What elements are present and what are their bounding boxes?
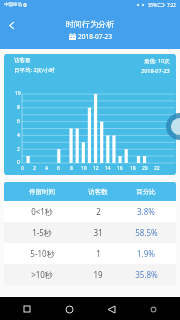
staticText: 31 (93, 227, 103, 238)
button[interactable]: 2018-07-23 (69, 32, 112, 41)
button[interactable]: 0<1秒 (4, 201, 176, 222)
staticText: 8 (70, 165, 73, 172)
staticText: 10 (81, 165, 87, 172)
staticText: 访客数 (88, 188, 108, 196)
staticText: 2 (96, 206, 101, 217)
button[interactable]: Screenshot (144, 300, 162, 318)
staticText: 7:22 (167, 2, 176, 8)
staticText: 12 (93, 165, 99, 172)
staticText: 2018-07-23 (78, 32, 112, 41)
staticText: 0<1秒 (31, 206, 53, 217)
staticText: 16 (117, 165, 123, 172)
staticText: 14 (105, 165, 111, 172)
staticText: 22 (154, 165, 160, 172)
staticText: 3.8% (137, 206, 155, 217)
staticText: 6 (17, 118, 20, 125)
button[interactable]: Back (102, 300, 120, 318)
staticText: 时间行为分析 (66, 19, 114, 29)
staticText: 1.9% (137, 248, 155, 259)
staticText: 访客量 (14, 57, 31, 64)
staticText: 中国移动 (4, 2, 22, 8)
staticText: 5-10秒 (30, 248, 55, 259)
button[interactable]: 1-5秒 (4, 222, 176, 243)
staticText: 35% (148, 2, 157, 8)
staticText: 8 (17, 104, 20, 111)
staticText: 20 (142, 165, 148, 172)
button[interactable]: Back (0, 14, 22, 36)
staticText: 4 (45, 165, 48, 172)
button[interactable]: >10秒 (4, 264, 176, 285)
staticText: 1 (96, 248, 101, 259)
button[interactable]: Recents (18, 300, 36, 318)
button[interactable]: 5-10秒 (4, 243, 176, 264)
staticText: 19 (93, 269, 103, 280)
staticText: 4 (17, 132, 20, 139)
staticText: 2018-07-23 (141, 67, 170, 74)
staticText: 1-5秒 (32, 227, 52, 238)
staticText: 百分比 (136, 188, 156, 196)
staticText: 2 (33, 165, 36, 172)
staticText: 2 (17, 146, 20, 153)
button[interactable]: Home (60, 300, 78, 318)
staticText: 0 (17, 159, 20, 166)
staticText: 最值: 10次 (144, 57, 170, 65)
staticText: 0 (21, 165, 24, 172)
staticText: 6 (57, 165, 60, 172)
staticText: 18 (130, 165, 136, 172)
staticText: 10 (15, 90, 21, 97)
staticText: 58.5% (135, 227, 158, 238)
staticText: 停留时间 (29, 188, 55, 196)
staticText: >10秒 (31, 269, 53, 280)
staticText: 35.8% (135, 269, 158, 280)
staticText: 日平均: 2次/小时 (14, 66, 56, 74)
